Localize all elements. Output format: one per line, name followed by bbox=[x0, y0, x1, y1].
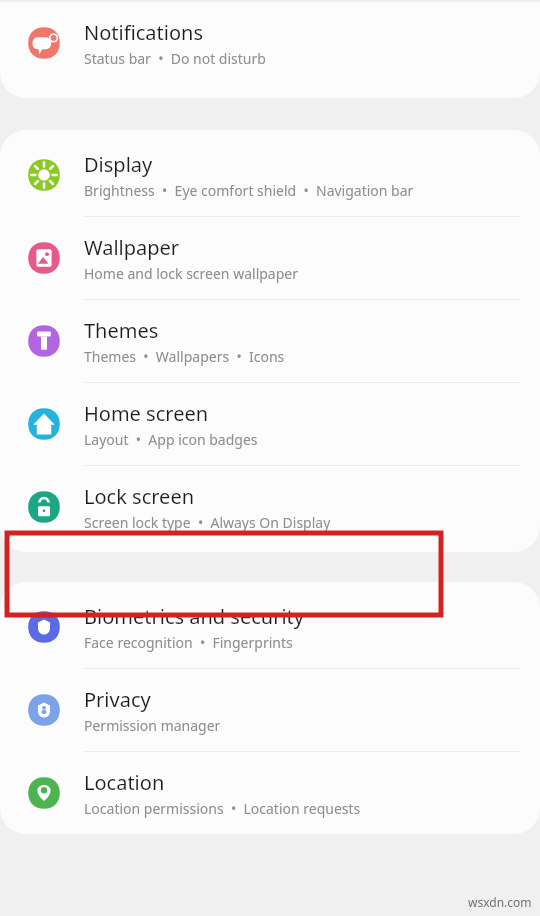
staticText: Face recognition • Fingerprints bbox=[84, 633, 293, 652]
button[interactable]: Themes bbox=[0, 300, 540, 383]
staticText: Location bbox=[84, 769, 165, 796]
button[interactable]: Wallpaper bbox=[0, 217, 540, 300]
button[interactable]: Notifications bbox=[0, 2, 540, 84]
staticText: Permission manager bbox=[84, 716, 221, 735]
staticText: Status bar • Do not disturb bbox=[84, 49, 266, 68]
staticText: Brightness • Eye comfort shield • Naviga… bbox=[84, 181, 414, 200]
staticText: Wallpaper bbox=[84, 234, 180, 261]
button[interactable]: Display bbox=[0, 134, 540, 217]
button[interactable]: Privacy bbox=[0, 669, 540, 752]
staticText: Notifications bbox=[84, 19, 203, 46]
staticText: wsxdn.com bbox=[468, 894, 532, 910]
button[interactable]: Home screen bbox=[0, 383, 540, 466]
button[interactable]: Location bbox=[0, 752, 540, 834]
staticText: Privacy bbox=[84, 686, 151, 713]
staticText: Home screen bbox=[84, 400, 209, 427]
staticText: Themes • Wallpapers • Icons bbox=[84, 347, 285, 366]
staticText: Themes bbox=[84, 317, 159, 344]
staticText: Lock screen bbox=[84, 483, 195, 510]
staticText: Display bbox=[84, 151, 153, 178]
staticText: Layout • App icon badges bbox=[84, 430, 258, 449]
button[interactable]: Lock screen bbox=[0, 466, 540, 548]
button[interactable]: Biometrics and security bbox=[0, 586, 540, 669]
staticText: Biometrics and security bbox=[84, 603, 304, 630]
staticText: Location permissions • Location requests bbox=[84, 799, 361, 818]
staticText: Home and lock screen wallpaper bbox=[84, 264, 298, 283]
staticText: Screen lock type • Always On Display bbox=[84, 513, 331, 532]
